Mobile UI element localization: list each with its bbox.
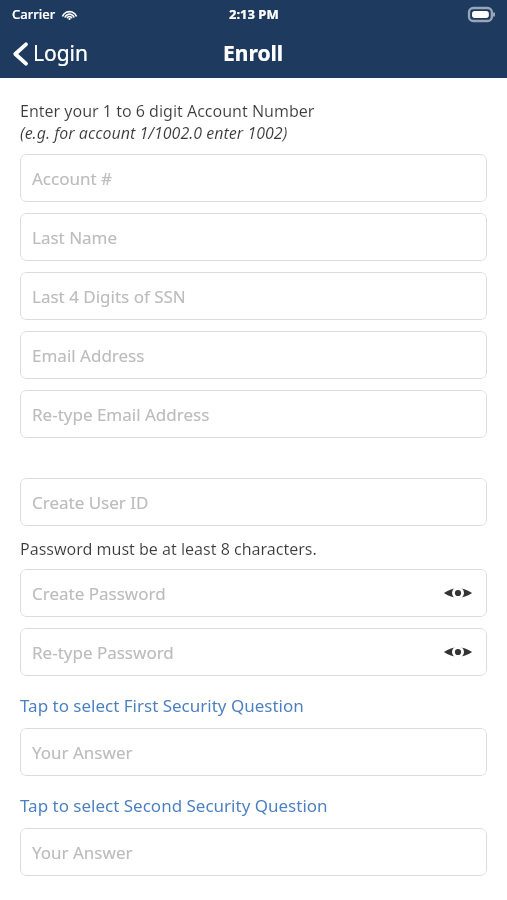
- staticText: 2:13 PM: [229, 5, 279, 23]
- staticText: Your Answer: [32, 741, 475, 764]
- button[interactable]: Last Name: [20, 213, 487, 261]
- staticText: Create Password: [32, 582, 441, 605]
- staticText: Password must be at least 8 characters.: [20, 538, 317, 560]
- staticText: Last 4 Digits of SSN: [32, 285, 475, 308]
- button[interactable]: Login: [0, 33, 101, 74]
- button[interactable]: Tap to select Second Security Question: [20, 792, 487, 819]
- staticText: Last Name: [32, 226, 475, 249]
- staticText: Account #: [32, 167, 475, 190]
- staticText: Tap to select First Security Question: [20, 694, 304, 717]
- staticText: Create User ID: [32, 491, 475, 514]
- button[interactable]: Create User ID: [20, 478, 487, 526]
- button[interactable]: Re-type Email Address: [20, 390, 487, 438]
- button[interactable]: Create Password: [20, 569, 487, 617]
- staticText: Enroll: [223, 39, 284, 68]
- button[interactable]: Your Answer: [20, 828, 487, 876]
- button[interactable]: Show re-typed password: [441, 635, 475, 669]
- staticText: Carrier: [12, 5, 56, 23]
- staticText: Your Answer: [32, 841, 475, 864]
- staticText: Re-type Email Address: [32, 403, 475, 426]
- staticText: Enter your 1 to 6 digit Account Number: [20, 100, 315, 122]
- staticText: Tap to select Second Security Question: [20, 794, 328, 817]
- button[interactable]: Account #: [20, 154, 487, 202]
- staticText: (e.g. for account 1/1002.0 enter 1002): [20, 122, 288, 144]
- button[interactable]: Re-type Password: [20, 628, 487, 676]
- staticText: Email Address: [32, 344, 475, 367]
- button[interactable]: Email Address: [20, 331, 487, 379]
- button[interactable]: Last 4 Digits of SSN: [20, 272, 487, 320]
- button[interactable]: Tap to select First Security Question: [20, 692, 487, 719]
- staticText: Login: [33, 39, 89, 68]
- staticText: Re-type Password: [32, 641, 441, 664]
- button[interactable]: Your Answer: [20, 728, 487, 776]
- button[interactable]: Show password: [441, 576, 475, 610]
